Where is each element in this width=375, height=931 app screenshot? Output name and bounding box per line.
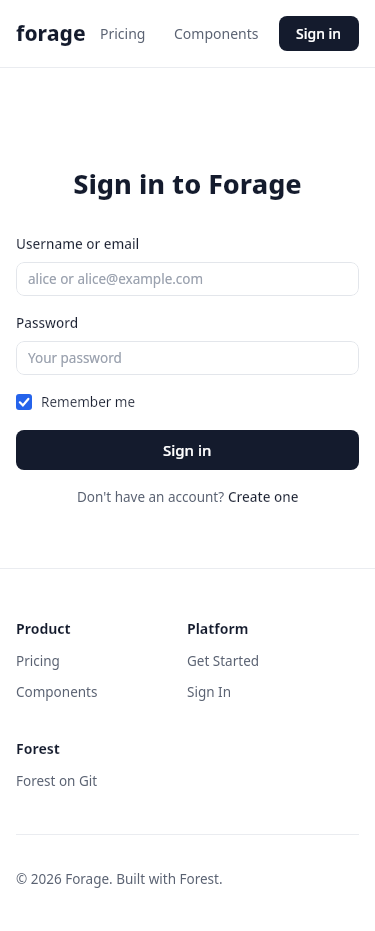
- button[interactable]: Pricing: [98, 20, 148, 47]
- other: Remember me checkbox: [16, 394, 32, 410]
- button[interactable]: Remember me checkbox: [16, 393, 136, 411]
- staticText: Your password: [28, 349, 122, 367]
- button[interactable]: Components: [16, 683, 98, 701]
- staticText: Remember me: [41, 393, 136, 411]
- staticText: Pricing: [16, 652, 60, 670]
- staticText: Password: [16, 314, 79, 332]
- button[interactable]: Components: [172, 20, 261, 47]
- staticText: Forest on Git: [16, 772, 98, 790]
- staticText: Create one: [228, 488, 299, 506]
- staticText: Don't have an account?: [77, 488, 228, 506]
- button[interactable]: Sign in: [279, 16, 359, 51]
- staticText: Sign in: [296, 24, 342, 43]
- staticText: Platform: [187, 619, 249, 638]
- button[interactable]: Sign in: [16, 430, 359, 470]
- staticText: forage: [16, 19, 86, 48]
- button[interactable]: forage: [16, 19, 86, 48]
- staticText: Components: [174, 24, 259, 43]
- staticText: Pricing: [100, 24, 146, 43]
- button[interactable]: Get Started: [187, 652, 260, 670]
- staticText: Sign in: [163, 440, 212, 460]
- staticText: Components: [16, 683, 98, 701]
- button[interactable]: Forest on Git: [16, 772, 98, 790]
- button[interactable]: Sign In: [187, 683, 231, 701]
- staticText: Forest: [16, 739, 60, 758]
- staticText: alice or alice@example.com: [28, 270, 204, 288]
- button[interactable]: alice or alice@example.com: [16, 262, 359, 296]
- button[interactable]: Pricing: [16, 652, 60, 670]
- staticText: Username or email: [16, 235, 140, 253]
- staticText: © 2026 Forage. Built with Forest.: [16, 870, 223, 888]
- staticText: Get Started: [187, 652, 260, 670]
- staticText: Sign In: [187, 683, 231, 701]
- button[interactable]: Create one: [228, 488, 299, 506]
- button[interactable]: Your password: [16, 341, 359, 375]
- staticText: Sign in to Forage: [73, 165, 302, 202]
- staticText: Product: [16, 619, 71, 638]
